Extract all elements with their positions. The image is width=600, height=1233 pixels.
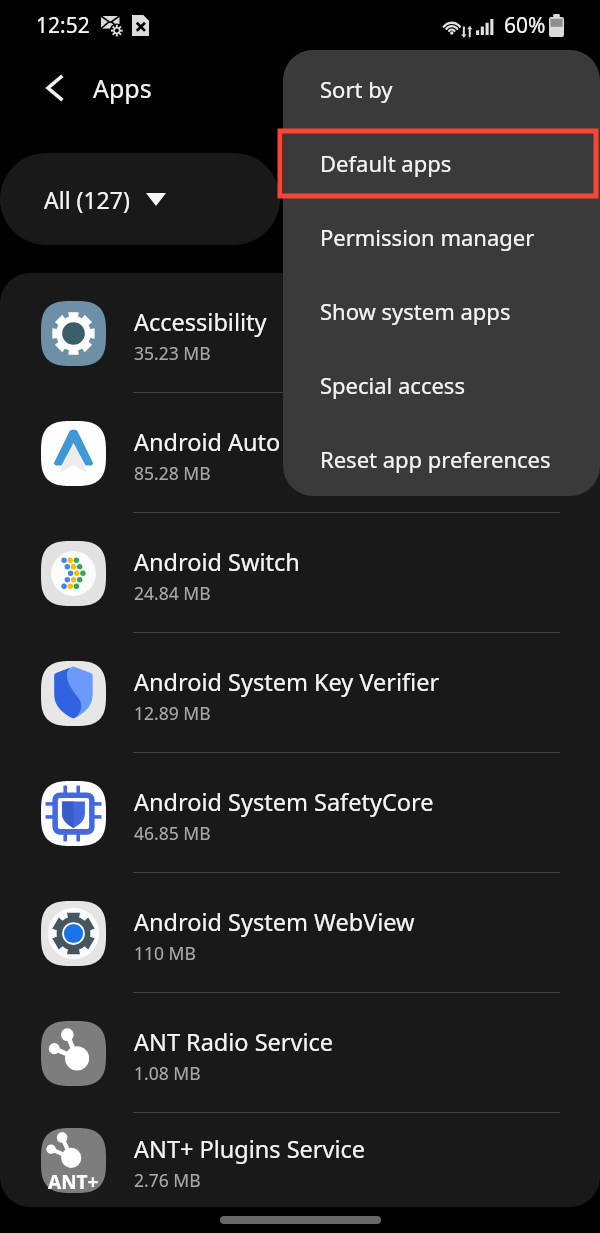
staticText: Show system apps bbox=[320, 296, 511, 326]
staticText: 110 MB bbox=[134, 941, 196, 965]
staticText: Default apps bbox=[320, 148, 452, 178]
button[interactable]: Accessibility bbox=[0, 273, 600, 393]
button[interactable]: All (127) bbox=[0, 153, 280, 245]
button[interactable]: Permission manager bbox=[283, 200, 600, 274]
staticText: All (127) bbox=[44, 184, 130, 215]
button[interactable]: Android System WebView bbox=[0, 873, 600, 993]
staticText: Android System Key Verifier bbox=[134, 666, 440, 698]
button[interactable]: Sort by bbox=[283, 52, 600, 126]
staticText: 35.23 MB bbox=[134, 341, 211, 365]
staticText: 12.89 MB bbox=[134, 701, 211, 725]
button[interactable]: Special access bbox=[283, 348, 600, 422]
staticText: 12:52 bbox=[36, 11, 90, 40]
staticText: Sort by bbox=[320, 74, 393, 104]
staticText: Accessibility bbox=[134, 306, 267, 338]
button[interactable]: Android Switch bbox=[0, 513, 600, 633]
staticText: Android Switch bbox=[134, 546, 300, 578]
button[interactable]: Android System Key Verifier bbox=[0, 633, 600, 753]
button[interactable]: Back bbox=[30, 64, 78, 112]
staticText: 85.28 MB bbox=[134, 461, 211, 485]
staticText: Permission manager bbox=[320, 222, 535, 252]
staticText: Apps bbox=[93, 71, 152, 105]
staticText: 1.08 MB bbox=[134, 1061, 201, 1085]
staticText: 60% bbox=[504, 11, 546, 40]
staticText: Reset app preferences bbox=[320, 444, 551, 474]
staticText: 24.84 MB bbox=[134, 581, 211, 605]
button[interactable]: ANT Radio Service bbox=[0, 993, 600, 1113]
button[interactable]: Show system apps bbox=[283, 274, 600, 348]
staticText: ANT+ bbox=[48, 1169, 99, 1195]
button[interactable]: Android System SafetyCore bbox=[0, 753, 600, 873]
staticText: Android System WebView bbox=[134, 906, 415, 938]
staticText: ANT Radio Service bbox=[134, 1026, 334, 1058]
staticText: Special access bbox=[320, 370, 465, 400]
staticText: 46.85 MB bbox=[134, 821, 211, 845]
button[interactable]: ANT+ bbox=[0, 1113, 600, 1207]
button[interactable]: Reset app preferences bbox=[283, 422, 600, 496]
staticText: ANT+ Plugins Service bbox=[134, 1133, 366, 1165]
button[interactable]: Default apps bbox=[283, 126, 600, 200]
button[interactable]: Android Auto bbox=[0, 393, 600, 513]
staticText: Android Auto bbox=[134, 426, 281, 458]
staticText: Android System SafetyCore bbox=[134, 786, 434, 818]
staticText: 2.76 MB bbox=[134, 1168, 201, 1192]
